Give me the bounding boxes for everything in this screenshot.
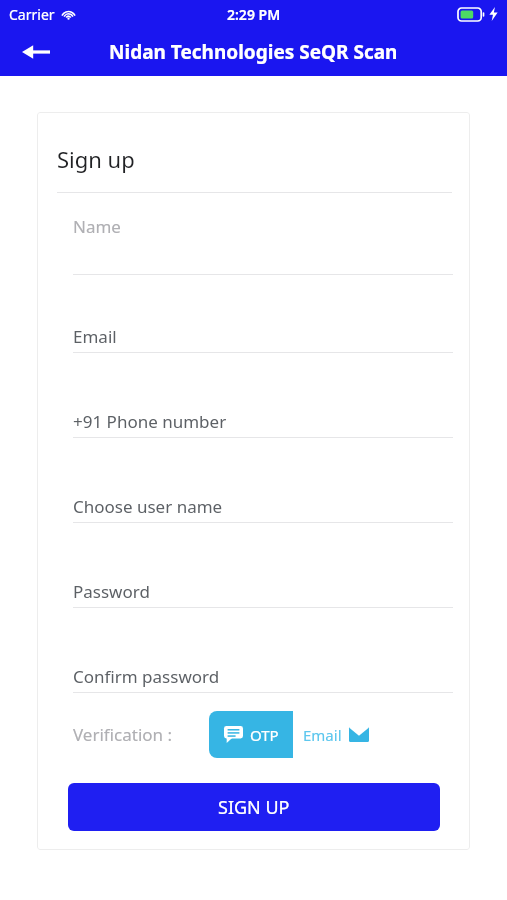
staticText: Verification : bbox=[73, 723, 173, 746]
staticText: Email bbox=[303, 725, 342, 745]
button[interactable]: Email bbox=[73, 325, 453, 353]
button[interactable]: Email bbox=[293, 711, 379, 758]
staticText: Email bbox=[73, 325, 117, 348]
button[interactable]: Name bbox=[73, 215, 453, 275]
staticText: +91 Phone number bbox=[73, 410, 227, 433]
staticText: Sign up bbox=[57, 144, 135, 174]
staticText: Name bbox=[73, 215, 121, 238]
button[interactable]: OTP bbox=[209, 711, 293, 758]
staticText: OTP bbox=[250, 725, 279, 745]
button[interactable]: Confirm password bbox=[73, 665, 453, 693]
staticText: Confirm password bbox=[73, 665, 220, 688]
button[interactable]: Choose user name bbox=[73, 495, 453, 523]
staticText: Carrier bbox=[9, 5, 55, 24]
button[interactable]: Password bbox=[73, 580, 453, 608]
button[interactable]: SIGN UP bbox=[68, 783, 440, 831]
staticText: SIGN UP bbox=[218, 795, 290, 820]
staticText: 2:29 PM bbox=[227, 5, 281, 24]
staticText: Nidan Technologies SeQR Scan bbox=[109, 39, 398, 65]
button[interactable]: +91 Phone number bbox=[73, 410, 453, 438]
button[interactable]: Back bbox=[12, 28, 60, 76]
staticText: Password bbox=[73, 580, 150, 603]
staticText: Choose user name bbox=[73, 495, 223, 518]
